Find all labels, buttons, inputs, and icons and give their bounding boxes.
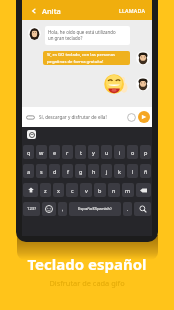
button[interactable]: d: [49, 164, 60, 178]
button[interactable]: s: [36, 164, 47, 178]
staticText: i: [119, 149, 121, 156]
button[interactable]: Stickers: [27, 130, 36, 139]
staticText: Anita: [42, 6, 61, 16]
staticText: Teclado español: [27, 254, 147, 274]
button[interactable]: Period: [123, 202, 132, 216]
staticText: Español(Spanish): [78, 206, 112, 212]
button[interactable]: Attach: [26, 113, 35, 122]
staticText: v: [85, 187, 88, 194]
staticText: ñ: [144, 168, 148, 175]
staticText: Hola, he oído que está utilizando un gra…: [48, 29, 116, 41]
staticText: s: [40, 168, 43, 175]
button[interactable]: t: [75, 145, 86, 159]
staticText: d: [53, 168, 57, 175]
button[interactable]: Back: [30, 7, 38, 15]
button[interactable]: i: [114, 145, 125, 159]
staticText: g: [79, 168, 83, 175]
staticText: e: [53, 149, 57, 156]
staticText: n: [112, 187, 116, 194]
button[interactable]: p: [140, 145, 151, 159]
button[interactable]: 123?: [23, 202, 40, 216]
button[interactable]: f: [62, 164, 73, 178]
button[interactable]: LLAMADA: [119, 7, 147, 14]
button[interactable]: c: [66, 183, 78, 197]
staticText: m: [125, 187, 131, 194]
button[interactable]: l: [127, 164, 138, 178]
staticText: p: [144, 149, 148, 156]
button[interactable]: Emoji: [127, 113, 136, 122]
button[interactable]: j: [101, 164, 112, 178]
button[interactable]: Backspace: [136, 183, 151, 197]
button[interactable]: Comma: [58, 202, 67, 216]
button[interactable]: w: [36, 145, 47, 159]
staticText: Sí, es GO teclado, con las personas pega…: [47, 52, 115, 64]
staticText: x: [57, 187, 60, 194]
button[interactable]: Español(Spanish): [69, 202, 121, 216]
button[interactable]: x: [53, 183, 64, 197]
staticText: y: [92, 149, 95, 156]
staticText: u: [105, 149, 109, 156]
staticText: 123?: [27, 206, 37, 212]
staticText: .: [127, 206, 129, 213]
button[interactable]: Send: [138, 111, 150, 123]
button[interactable]: v: [80, 183, 92, 197]
staticText: w: [39, 149, 44, 156]
staticText: Disfrutar de cada gifo: [49, 278, 125, 288]
button[interactable]: ñ: [140, 164, 151, 178]
staticText: r: [66, 149, 69, 156]
button[interactable]: a: [23, 164, 34, 178]
staticText: z: [44, 187, 47, 194]
staticText: l: [132, 168, 134, 175]
button[interactable]: r: [62, 145, 73, 159]
staticText: q: [27, 149, 31, 156]
button[interactable]: e: [49, 145, 60, 159]
button[interactable]: n: [108, 183, 120, 197]
button[interactable]: h: [88, 164, 99, 178]
button[interactable]: o: [127, 145, 138, 159]
button[interactable]: k: [114, 164, 125, 178]
staticText: j: [106, 168, 108, 175]
staticText: f: [67, 168, 69, 175]
button[interactable]: Shift: [23, 183, 38, 197]
staticText: h: [92, 168, 96, 175]
staticText: b: [98, 187, 102, 194]
button[interactable]: q: [23, 145, 34, 159]
button[interactable]: Search: [134, 202, 151, 216]
button[interactable]: z: [40, 183, 51, 197]
button[interactable]: b: [94, 183, 106, 197]
staticText: k: [118, 168, 121, 175]
staticText: c: [71, 187, 74, 194]
button[interactable]: Emoji: [42, 202, 56, 216]
staticText: a: [27, 168, 31, 175]
button[interactable]: u: [101, 145, 112, 159]
staticText: Sí, descargar y disfrutar de ella!: [39, 114, 107, 120]
staticText: LLAMADA: [119, 7, 146, 14]
staticText: o: [131, 149, 135, 156]
button[interactable]: g: [75, 164, 86, 178]
button[interactable]: m: [122, 183, 134, 197]
staticText: t: [80, 149, 82, 156]
button[interactable]: y: [88, 145, 99, 159]
staticText: ,: [62, 206, 64, 213]
